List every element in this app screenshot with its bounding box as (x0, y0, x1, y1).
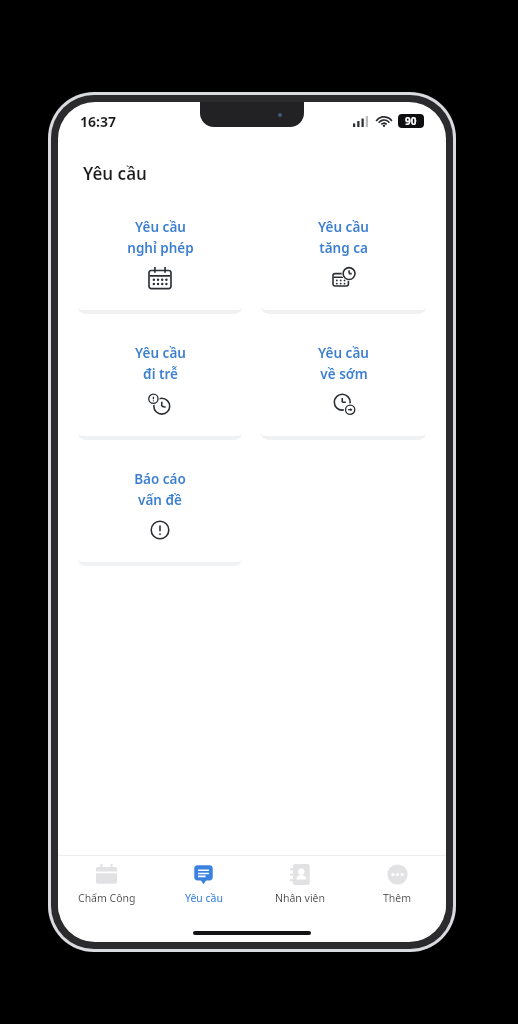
other: Thêm (387, 864, 408, 885)
button[interactable]: Yêu cầu (258, 201, 429, 310)
staticText: Yêu cầu (318, 218, 369, 236)
staticText: nghỉ phép (127, 239, 194, 257)
button[interactable]: Yêu cầu (75, 201, 245, 310)
other: Nhân viên (290, 864, 311, 885)
staticText: Thêm (383, 891, 412, 905)
staticText: 16:37 (80, 112, 116, 131)
button[interactable]: Yêu cầu (75, 327, 245, 436)
button[interactable]: Báo cáo (75, 453, 245, 562)
staticText: Nhân viên (275, 891, 326, 905)
staticText: về sớm (320, 365, 368, 383)
button[interactable]: Nhân viên (252, 856, 349, 914)
button[interactable]: Yêu cầu (258, 327, 429, 436)
staticText: Yêu cầu (185, 891, 223, 905)
staticText: Báo cáo (134, 470, 186, 488)
other: Yêu cầu (193, 864, 214, 885)
staticText: đi trễ (143, 365, 178, 383)
staticText: Yêu cầu (83, 162, 147, 185)
staticText: tăng ca (319, 239, 368, 257)
other: Chấm Công (96, 864, 117, 885)
button[interactable]: Yêu cầu (155, 856, 252, 914)
staticText: Yêu cầu (135, 218, 186, 236)
button[interactable]: Chấm Công (58, 856, 155, 914)
staticText: Yêu cầu (318, 344, 369, 362)
staticText: Chấm Công (78, 891, 136, 905)
staticText: 90 (405, 114, 417, 128)
button[interactable]: Thêm (349, 856, 446, 914)
staticText: vấn đề (138, 491, 182, 509)
staticText: Yêu cầu (135, 344, 186, 362)
